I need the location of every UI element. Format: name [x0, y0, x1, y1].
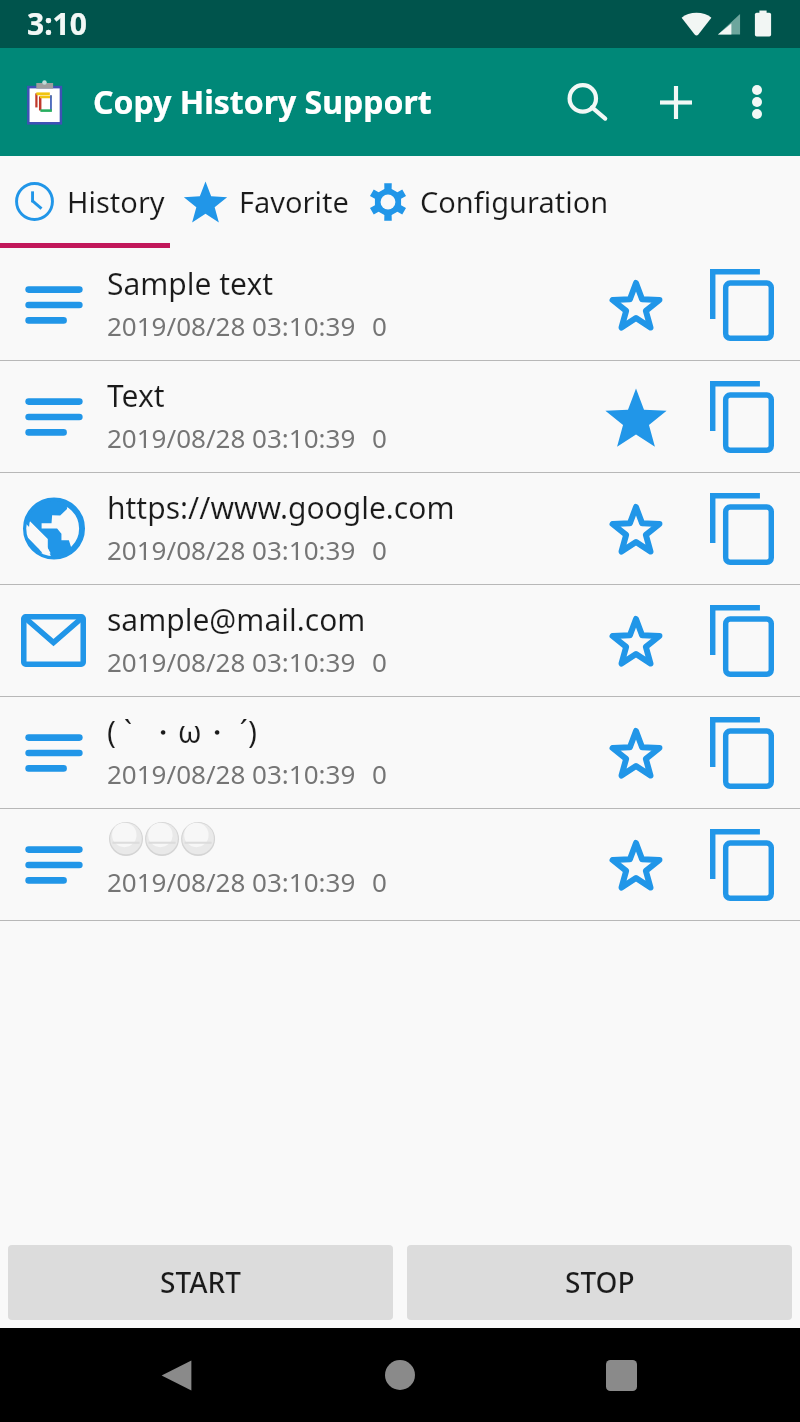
- staticText: 2019/08/28 03:10:39: [107, 864, 356, 899]
- button[interactable]: Copy: [686, 585, 796, 696]
- button[interactable]: Configuration: [349, 155, 609, 248]
- button[interactable]: Favorite: [586, 809, 686, 920]
- staticText: sample@mail.com: [107, 599, 366, 640]
- button[interactable]: 2019/08/28 03:10:39: [0, 809, 800, 920]
- staticText: 0: [372, 864, 387, 899]
- staticText: Sample text: [107, 263, 274, 304]
- button[interactable]: Favorite: [172, 155, 349, 248]
- button[interactable]: START: [8, 1245, 393, 1320]
- staticText: 2019/08/28 03:10:39: [107, 756, 356, 791]
- staticText: 0: [372, 644, 387, 679]
- staticText: STOP: [565, 1263, 635, 1301]
- staticText: 0: [372, 532, 387, 567]
- button[interactable]: Copy: [686, 697, 796, 808]
- button[interactable]: sample@mail.com: [0, 585, 800, 696]
- staticText: 0: [372, 308, 387, 343]
- button[interactable]: Favorite: [586, 361, 686, 472]
- button[interactable]: Copy: [686, 249, 796, 360]
- button[interactable]: Copy: [686, 809, 796, 920]
- staticText: START: [160, 1263, 241, 1301]
- button[interactable]: Favorite: [586, 473, 686, 584]
- button[interactable]: Home: [356, 1328, 444, 1422]
- staticText: History: [67, 182, 165, 221]
- button[interactable]: Back: [132, 1328, 220, 1422]
- button[interactable]: Favorite: [586, 585, 686, 696]
- button[interactable]: History: [0, 155, 172, 248]
- staticText: 2019/08/28 03:10:39: [107, 532, 356, 567]
- button[interactable]: STOP: [407, 1245, 792, 1320]
- button[interactable]: Search: [543, 48, 633, 156]
- staticText: ( ` ・ω・ ´): [107, 711, 258, 752]
- button[interactable]: ( ` ・ω・ ´): [0, 697, 800, 808]
- staticText: Favorite: [239, 182, 349, 221]
- staticText: Configuration: [420, 182, 609, 221]
- button[interactable]: Sample text: [0, 249, 800, 360]
- staticText: 0: [372, 756, 387, 791]
- button[interactable]: Text: [0, 361, 800, 472]
- button[interactable]: More options: [719, 48, 795, 156]
- staticText: 2019/08/28 03:10:39: [107, 308, 356, 343]
- button[interactable]: Favorite: [586, 249, 686, 360]
- staticText: 2019/08/28 03:10:39: [107, 420, 356, 455]
- button[interactable]: Recents: [577, 1328, 665, 1422]
- staticText: 0: [372, 420, 387, 455]
- button[interactable]: Add: [633, 48, 719, 156]
- staticText: Copy History Support: [93, 80, 432, 124]
- button[interactable]: Copy: [686, 361, 796, 472]
- staticText: https://www.google.com: [107, 487, 455, 528]
- button[interactable]: https://www.google.com: [0, 473, 800, 584]
- button[interactable]: Copy: [686, 473, 796, 584]
- button[interactable]: Favorite: [586, 697, 686, 808]
- staticText: 2019/08/28 03:10:39: [107, 644, 356, 679]
- staticText: 3:10: [27, 3, 87, 44]
- staticText: Text: [107, 375, 165, 416]
